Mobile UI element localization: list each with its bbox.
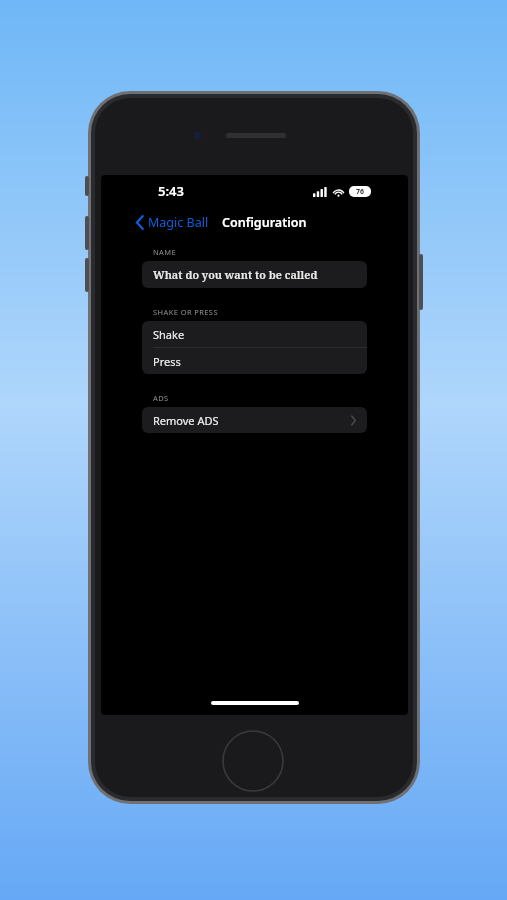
staticText: Configuration: [222, 214, 307, 231]
button[interactable]: Magic Ball: [134, 210, 211, 235]
button[interactable]: Remove ADS: [142, 407, 367, 433]
staticText: NAME: [153, 247, 177, 257]
staticText: SHAKE OR PRESS: [153, 307, 218, 317]
staticText: What do you want to be called: [153, 267, 318, 282]
staticText: Press: [153, 354, 181, 369]
staticText: 5:43: [158, 182, 184, 200]
staticText: Magic Ball: [148, 214, 209, 231]
button[interactable]: Shake: [142, 321, 367, 347]
staticText: 76: [356, 187, 365, 197]
staticText: ADS: [153, 393, 169, 403]
button[interactable]: Press: [142, 348, 367, 374]
other: Open: [351, 416, 356, 425]
staticText: Remove ADS: [153, 413, 219, 428]
button[interactable]: What do you want to be called: [142, 261, 367, 288]
staticText: Shake: [153, 327, 185, 342]
